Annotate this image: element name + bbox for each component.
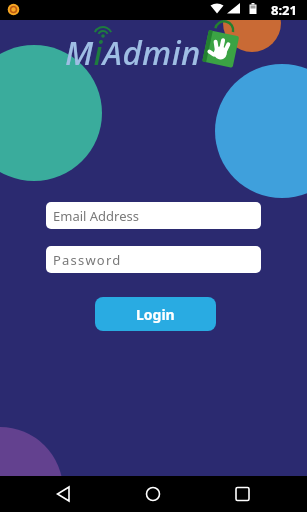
button[interactable] bbox=[45, 476, 83, 512]
button[interactable]: Email Address bbox=[46, 202, 261, 229]
staticText: Email Address bbox=[53, 207, 139, 225]
button[interactable] bbox=[223, 476, 261, 512]
staticText: MiAdmin bbox=[65, 30, 201, 75]
staticText: Password bbox=[53, 251, 122, 269]
button[interactable]: Login bbox=[95, 297, 216, 331]
staticText: Login bbox=[136, 305, 175, 324]
button[interactable] bbox=[134, 476, 172, 512]
button[interactable]: Password bbox=[46, 246, 261, 273]
staticText: 8:21 bbox=[271, 1, 297, 19]
